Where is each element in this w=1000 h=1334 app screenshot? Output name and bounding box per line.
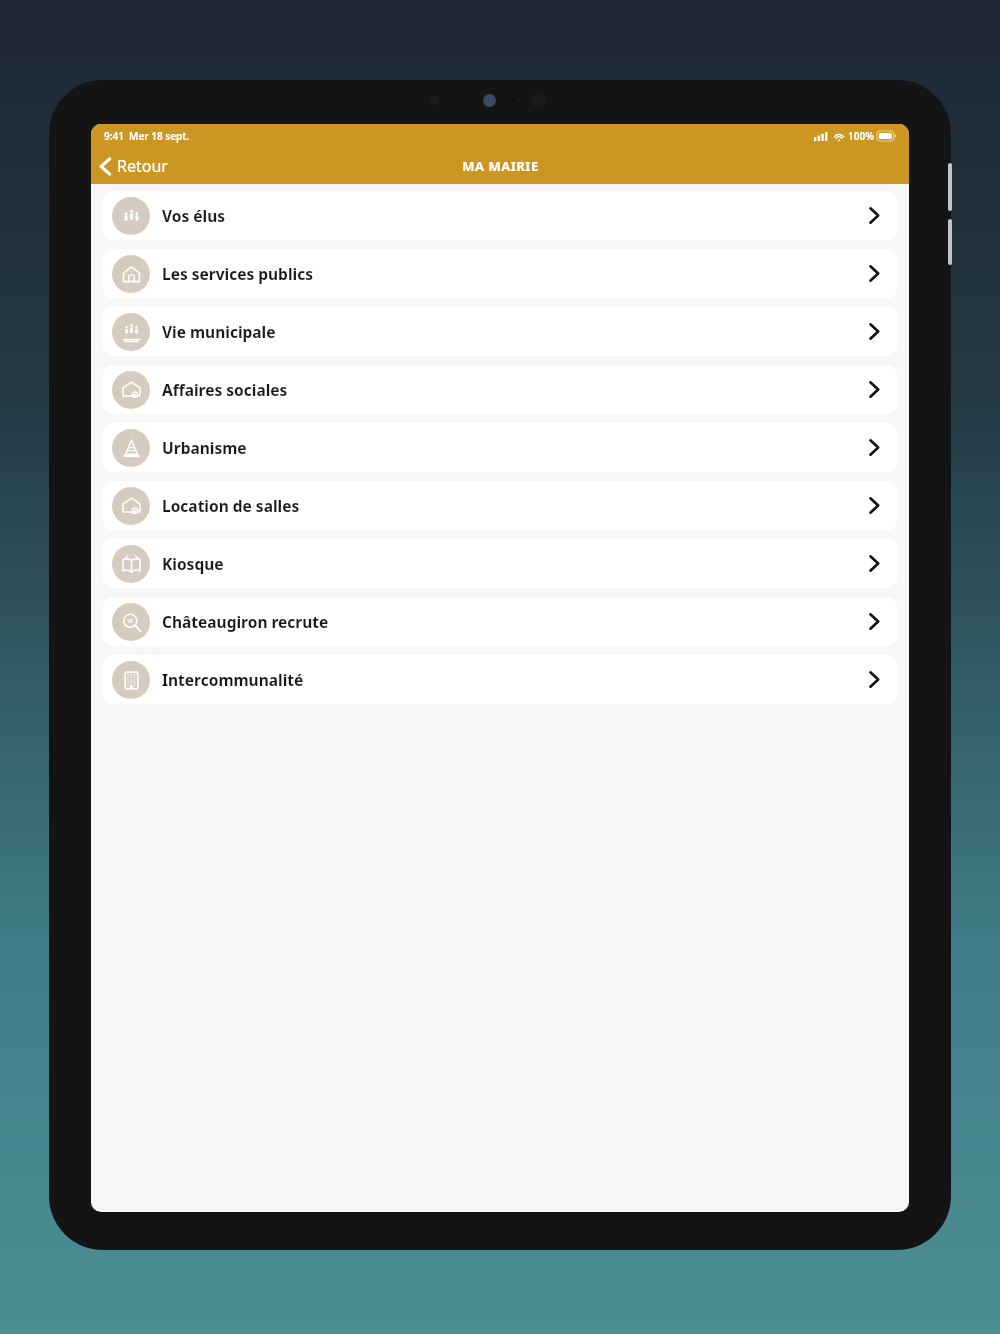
- other: Ouvrir Vie municipale: [868, 322, 880, 341]
- staticText: Châteaugiron recrute: [162, 611, 329, 632]
- other: Ouvrir Vos élus: [868, 206, 880, 225]
- staticText: Les services publics: [162, 263, 313, 284]
- button[interactable]: Intercommunalité: [103, 655, 897, 704]
- other: Ouvrir Kiosque: [868, 554, 880, 573]
- other: Ouvrir Les services publics: [868, 264, 880, 283]
- button[interactable]: Affaires sociales: [103, 365, 897, 414]
- other: Ouvrir Location de salles: [868, 496, 880, 515]
- staticText: Intercommunalité: [162, 669, 304, 690]
- other: Ouvrir Urbanisme: [868, 438, 880, 457]
- staticText: Vie municipale: [162, 321, 276, 342]
- button[interactable]: Vos élus: [103, 191, 897, 240]
- button[interactable]: Les services publics: [103, 249, 897, 298]
- button[interactable]: Châteaugiron recrute: [103, 597, 897, 646]
- staticText: Retour: [117, 155, 168, 177]
- staticText: 100%: [848, 129, 874, 143]
- other: Ouvrir Intercommunalité: [868, 670, 880, 689]
- staticText: 9:41 Mer 18 sept.: [104, 129, 190, 143]
- button[interactable]: Urbanisme: [103, 423, 897, 472]
- staticText: Affaires sociales: [162, 379, 288, 400]
- staticText: MA MAIRIE: [462, 157, 539, 175]
- staticText: Vos élus: [162, 205, 225, 226]
- button[interactable]: Vie municipale: [103, 307, 897, 356]
- button[interactable]: Location de salles: [103, 481, 897, 530]
- staticText: Kiosque: [162, 553, 224, 574]
- button[interactable]: Kiosque: [103, 539, 897, 588]
- button[interactable]: Retour: [91, 151, 178, 181]
- other: Ouvrir Châteaugiron recrute: [868, 612, 880, 631]
- staticText: Location de salles: [162, 495, 300, 516]
- staticText: Urbanisme: [162, 437, 247, 458]
- other: Ouvrir Affaires sociales: [868, 380, 880, 399]
